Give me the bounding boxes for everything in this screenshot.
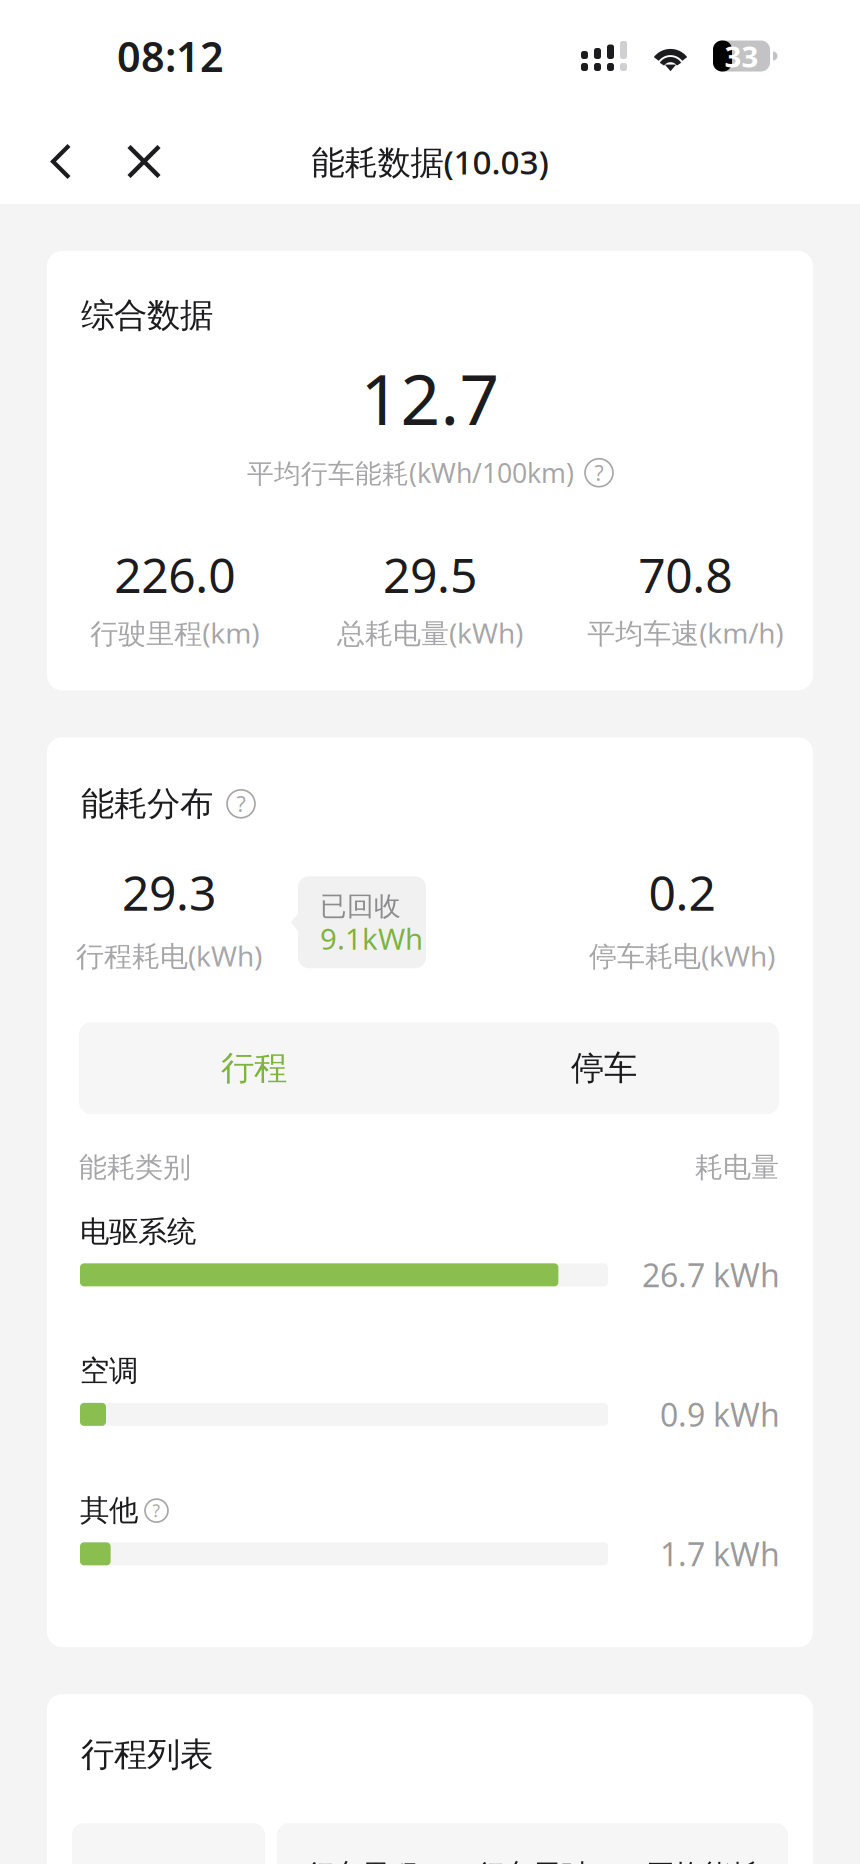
staticText: 平均行车能耗(kWh/100km): [247, 455, 574, 490]
staticText: 29.3: [122, 860, 216, 924]
staticText: 1.7 kWh: [660, 1533, 780, 1575]
staticText: 能耗分布: [81, 783, 213, 824]
staticText: 耗电量: [695, 1150, 779, 1185]
staticText: 33: [724, 36, 758, 75]
staticText: 行程: [221, 1048, 287, 1089]
staticText: 空调: [80, 1353, 138, 1389]
staticText: 行程耗电(kWh): [76, 937, 262, 974]
staticText: 26.7 kWh: [642, 1254, 780, 1296]
staticText: 08:12: [117, 29, 224, 83]
staticText: 综合数据: [81, 295, 213, 336]
staticText: 行程列表: [81, 1734, 213, 1775]
staticText: 总耗电量(kWh): [337, 614, 523, 651]
staticText: 平均能耗: [647, 1858, 759, 1864]
staticText: ?: [236, 790, 245, 818]
staticText: 29.5: [383, 542, 477, 606]
staticText: 行车里程: [306, 1858, 418, 1864]
staticText: 停车耗电(kWh): [589, 937, 775, 974]
staticText: 226.0: [114, 542, 235, 606]
button[interactable]: Close: [116, 129, 172, 193]
button[interactable]: 停车: [429, 1022, 779, 1114]
staticText: 0.9 kWh: [660, 1393, 780, 1436]
staticText: ?: [594, 459, 603, 487]
staticText: 已回收: [320, 890, 401, 923]
staticText: ?: [152, 1499, 160, 1522]
button[interactable]: Back: [33, 129, 89, 193]
staticText: 0.2: [648, 860, 715, 924]
staticText: 行驶里程(km): [90, 614, 259, 651]
staticText: 其他: [80, 1493, 138, 1529]
staticText: 70.8: [638, 542, 732, 606]
staticText: 平均车速(km/h): [587, 614, 783, 651]
staticText: 行车用时: [476, 1858, 588, 1864]
staticText: 12.7: [360, 352, 499, 444]
staticText: 能耗数据(10.03): [311, 139, 548, 184]
staticText: 能耗类别: [79, 1150, 191, 1185]
staticText: 电驱系统: [80, 1214, 196, 1250]
button[interactable]: 行程: [79, 1022, 429, 1114]
staticText: 停车: [571, 1048, 637, 1089]
staticText: 9.1kWh: [320, 919, 423, 958]
